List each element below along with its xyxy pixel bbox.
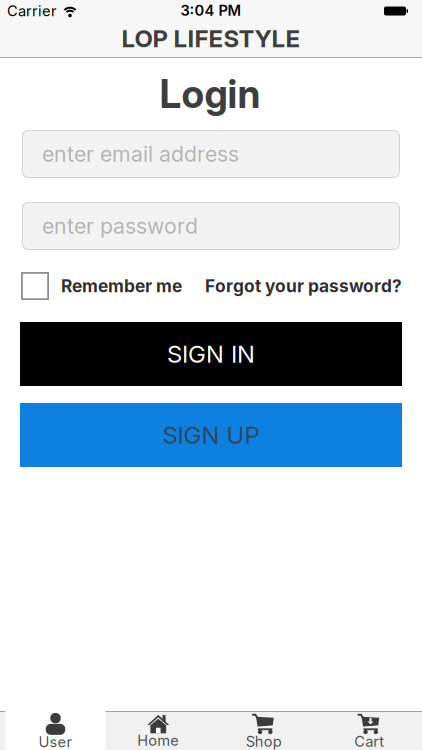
staticText: enter email address — [42, 141, 239, 167]
button[interactable]: Cart — [319, 711, 419, 750]
button[interactable]: SIGN UP — [20, 403, 402, 467]
staticText: SIGN IN — [167, 340, 255, 368]
staticText: LOP LIFESTYLE — [121, 24, 300, 53]
staticText: Cart — [354, 733, 384, 750]
staticText: User — [38, 733, 72, 750]
staticText: Remember me — [61, 276, 182, 296]
button[interactable]: Forgot your password? — [205, 276, 402, 296]
button[interactable]: Remember me — [21, 272, 182, 300]
staticText: Forgot your password? — [205, 276, 402, 296]
button[interactable]: enter password — [22, 202, 400, 250]
staticText: Carrier — [7, 2, 57, 20]
staticText: enter password — [42, 213, 198, 239]
button[interactable]: User — [5, 711, 105, 750]
staticText: 3:04 PM — [180, 2, 241, 19]
staticText: Shop — [246, 733, 282, 750]
button[interactable]: Shop — [214, 711, 314, 750]
staticText: Home — [137, 732, 179, 749]
staticText: SIGN UP — [162, 421, 259, 449]
button[interactable]: enter email address — [22, 130, 400, 178]
staticText: Login — [159, 71, 260, 117]
button[interactable]: SIGN IN — [20, 322, 402, 386]
button[interactable]: Home — [108, 711, 208, 750]
